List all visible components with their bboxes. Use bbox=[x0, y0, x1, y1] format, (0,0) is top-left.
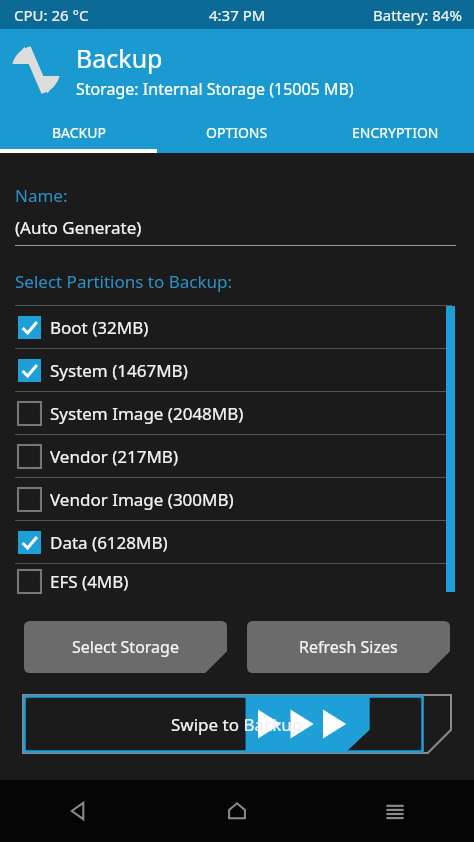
button[interactable]: Boot (32MB) bbox=[15, 306, 452, 349]
button[interactable]: (Auto Generate) bbox=[15, 216, 456, 246]
staticText: Refresh Sizes bbox=[299, 636, 398, 658]
staticText: Vendor (217MB) bbox=[50, 445, 178, 468]
staticText: CPU: 26 °C bbox=[14, 5, 89, 25]
staticText: Swipe to Backup bbox=[171, 713, 303, 736]
button[interactable]: Home bbox=[158, 780, 316, 842]
staticText: 4:37 PM bbox=[209, 5, 266, 25]
button[interactable]: System (1467MB) bbox=[15, 349, 452, 392]
staticText: EFS (4MB) bbox=[50, 570, 129, 593]
staticText: Boot (32MB) bbox=[50, 316, 149, 339]
button[interactable]: Select Storage bbox=[24, 621, 227, 673]
button[interactable]: Swipe to Backup bbox=[23, 695, 451, 753]
button[interactable]: Menu bbox=[316, 780, 474, 842]
staticText: System Image (2048MB) bbox=[50, 402, 244, 425]
button[interactable]: Vendor Image (300MB) bbox=[15, 478, 452, 521]
staticText: Vendor Image (300MB) bbox=[50, 488, 234, 511]
staticText: Name: bbox=[15, 184, 68, 207]
staticText: Backup bbox=[76, 41, 163, 75]
button[interactable]: Vendor (217MB) bbox=[15, 435, 452, 478]
button[interactable]: OPTIONS bbox=[158, 111, 316, 153]
staticText: Select Storage bbox=[72, 636, 179, 658]
button[interactable]: EFS (4MB) bbox=[15, 564, 452, 599]
staticText: System (1467MB) bbox=[50, 359, 188, 382]
staticText: Data (6128MB) bbox=[50, 531, 168, 554]
staticText: Storage: Internal Storage (15005 MB) bbox=[76, 78, 354, 100]
staticText: (Auto Generate) bbox=[15, 216, 142, 239]
staticText: Select Partitions to Backup: bbox=[15, 270, 233, 293]
button[interactable]: Refresh Sizes bbox=[247, 621, 450, 673]
button[interactable]: Data (6128MB) bbox=[15, 521, 452, 564]
staticText: ENCRYPTION bbox=[352, 123, 439, 142]
staticText: Battery: 84% bbox=[373, 5, 462, 25]
button[interactable]: Back bbox=[0, 780, 158, 842]
button[interactable]: BACKUP bbox=[0, 111, 158, 153]
staticText: OPTIONS bbox=[206, 123, 268, 142]
button[interactable]: ENCRYPTION bbox=[316, 111, 474, 153]
staticText: BACKUP bbox=[52, 123, 106, 142]
button[interactable]: System Image (2048MB) bbox=[15, 392, 452, 435]
